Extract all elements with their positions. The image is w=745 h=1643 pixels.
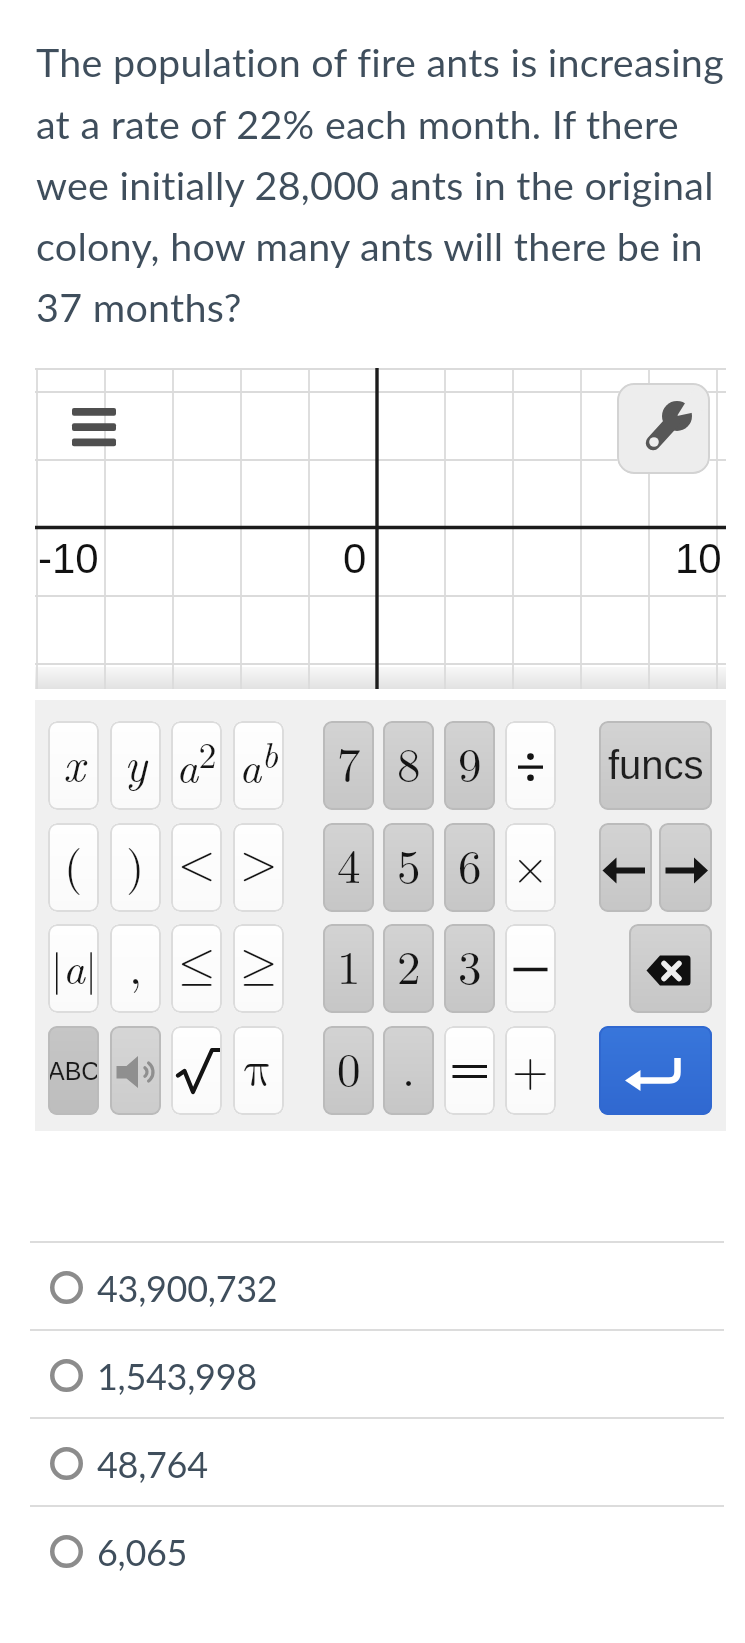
button[interactable]: 8: [383, 721, 434, 810]
staticText: 7: [337, 728, 361, 795]
staticText: ≤: [178, 941, 216, 989]
button[interactable]: 48,764: [30, 1421, 724, 1505]
staticText: ABC: [48, 1057, 99, 1085]
staticText: <: [178, 840, 216, 888]
button[interactable]: 6: [444, 823, 495, 912]
button[interactable]: 2: [383, 924, 434, 1013]
staticText: .: [402, 1033, 416, 1100]
button[interactable]: [505, 924, 556, 1013]
staticText: y: [124, 728, 147, 795]
button[interactable]: ≤: [171, 924, 222, 1013]
staticText: 6,065: [97, 1530, 188, 1573]
button[interactable]: [599, 823, 652, 912]
button[interactable]: 3: [444, 924, 495, 1013]
staticText: ab: [239, 727, 279, 796]
button[interactable]: [505, 721, 556, 810]
staticText: 6: [458, 830, 482, 897]
button[interactable]: x: [48, 721, 99, 810]
button[interactable]: [599, 1026, 712, 1115]
staticText: 8: [397, 728, 421, 795]
staticText: ): [126, 830, 145, 897]
button[interactable]: 7: [323, 721, 374, 810]
button[interactable]: [617, 383, 710, 474]
staticText: -10: [38, 535, 99, 575]
button[interactable]: ABC: [48, 1026, 99, 1115]
button[interactable]: <: [171, 823, 222, 912]
button[interactable]: >: [233, 823, 284, 912]
staticText: 43,900,732: [97, 1266, 278, 1309]
staticText: ,: [129, 931, 143, 998]
button[interactable]: ,: [110, 924, 161, 1013]
button[interactable]: 4: [323, 823, 374, 912]
button[interactable]: ab: [233, 721, 284, 810]
button[interactable]: 5: [383, 823, 434, 912]
button[interactable]: 1: [323, 924, 374, 1013]
staticText: 4: [337, 830, 361, 897]
staticText: >: [240, 840, 278, 888]
staticText: 1: [337, 931, 361, 998]
staticText: π: [244, 1046, 273, 1094]
button[interactable]: [444, 1026, 495, 1115]
staticText: 1,543,998: [97, 1354, 257, 1397]
button[interactable]: [629, 924, 712, 1013]
button[interactable]: |a|: [48, 924, 99, 1013]
staticText: 0: [337, 1033, 361, 1100]
button[interactable]: funcs: [599, 721, 712, 810]
button[interactable]: [110, 1026, 161, 1115]
staticText: funcs: [608, 743, 704, 788]
button[interactable]: π: [233, 1026, 284, 1115]
staticText: 10: [675, 535, 722, 575]
staticText: |a|: [51, 934, 97, 996]
staticText: +: [512, 1033, 549, 1100]
staticText: The population of fire ants is increasin…: [36, 38, 724, 330]
staticText: 3: [458, 931, 482, 998]
button[interactable]: a2: [171, 721, 222, 810]
button[interactable]: (: [48, 823, 99, 912]
button[interactable]: 9: [444, 721, 495, 810]
staticText: 48,764: [97, 1442, 208, 1485]
staticText: 0: [343, 535, 367, 575]
staticText: a2: [176, 727, 217, 796]
button[interactable]: 6,065: [30, 1509, 724, 1593]
button[interactable]: 1,543,998: [30, 1333, 724, 1417]
button[interactable]: .: [383, 1026, 434, 1115]
staticText: 2: [397, 931, 421, 998]
staticText: x: [63, 728, 85, 795]
staticText: ≥: [240, 941, 278, 989]
staticText: (: [64, 830, 83, 897]
button[interactable]: y: [110, 721, 161, 810]
button[interactable]: 43,900,732: [30, 1245, 724, 1329]
staticText: 9: [458, 728, 482, 795]
staticText: 5: [397, 830, 421, 897]
button[interactable]: ): [110, 823, 161, 912]
button[interactable]: 0: [323, 1026, 374, 1115]
staticText: ×: [512, 830, 549, 897]
button[interactable]: ×: [505, 823, 556, 912]
button[interactable]: +: [505, 1026, 556, 1115]
button[interactable]: [659, 823, 712, 912]
button[interactable]: ≥: [233, 924, 284, 1013]
button[interactable]: [171, 1026, 222, 1115]
button[interactable]: [72, 408, 116, 447]
